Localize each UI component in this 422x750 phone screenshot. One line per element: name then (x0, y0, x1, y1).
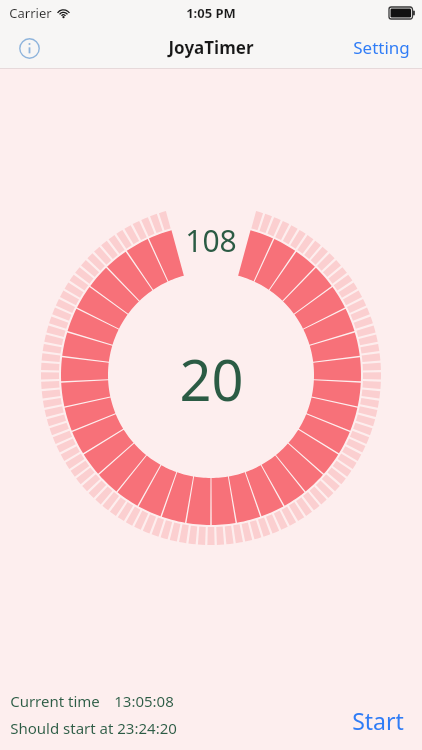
button[interactable]: Info (10, 29, 48, 67)
staticText: Setting (353, 36, 410, 59)
button[interactable]: Setting (353, 36, 410, 59)
staticText: Carrier (9, 4, 52, 22)
staticText: 1:05 PM (186, 4, 236, 22)
staticText: 20 (179, 341, 244, 417)
staticText: Should start at 23:24:20 (10, 718, 177, 738)
button[interactable]: Start (352, 705, 404, 736)
staticText: Start (352, 705, 404, 736)
staticText: 13:05:08 (114, 691, 174, 711)
staticText: Current time (10, 691, 100, 711)
staticText: JoyaTimer (168, 36, 254, 59)
staticText: 108 (185, 220, 237, 261)
